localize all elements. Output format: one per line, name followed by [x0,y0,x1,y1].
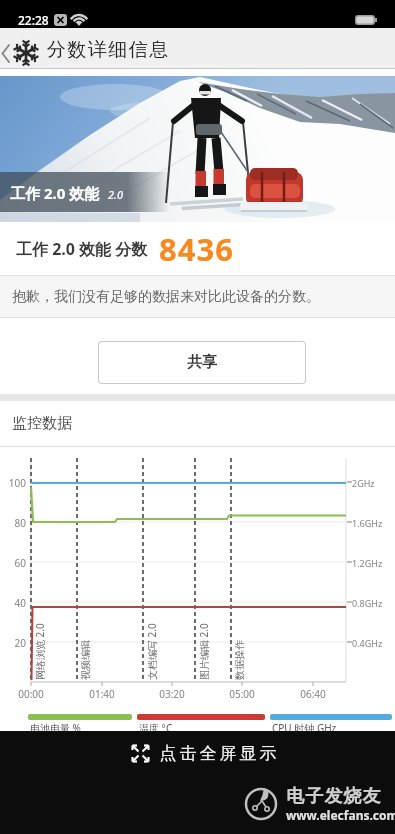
staticText: 80 [0,516,26,530]
staticText: 03:20 [155,687,189,701]
button[interactable]: 点击全屏显示 [131,743,278,764]
staticText: 40 [0,596,26,610]
staticText: 60 [0,556,26,570]
staticText: 监控数据 [12,414,72,433]
staticText: 工作 2.0 效能 分数 [16,238,148,260]
staticText: 网络浏览 2.0 [33,623,47,680]
button[interactable]: 分数详细信息 [0,28,395,69]
staticText: 22:28 [18,12,49,28]
staticText: 00:00 [14,687,48,701]
staticText: 01:40 [85,687,119,701]
staticText: 图片编辑 2.0 [197,623,211,680]
staticText: 8436 [159,228,234,270]
staticText: 2GHz [352,477,375,489]
staticText: 电池电量 % [30,721,81,735]
staticText: 05:00 [225,687,259,701]
staticText: 点击全屏显示 [158,743,278,764]
staticText: 06:40 [296,687,330,701]
staticText: 2.0 [108,187,124,202]
staticText: 1.2GHz [352,557,383,569]
staticText: 0.8GHz [352,597,383,609]
staticText: 共享 [187,353,217,372]
staticText: 20 [0,636,26,650]
staticText: 视频编辑 [79,640,92,680]
staticText: 数据操作 [233,640,246,680]
staticText: 0.4GHz [352,637,383,649]
staticText: 抱歉，我们没有足够的数据来对比此设备的分数。 [12,288,320,306]
staticText: CPU 时钟 GHz [272,721,337,735]
staticText: 电子发烧友 [286,785,381,808]
staticText: 工作 2.0 效能 [10,183,100,203]
staticText: 分数详细信息 [46,38,169,62]
staticText: 100 [0,476,26,490]
staticText: 文档编写 2.0 [145,623,159,680]
staticText: 温度 °C [139,721,173,735]
staticText: 1.6GHz [352,517,383,529]
button[interactable]: 共享 [99,342,305,383]
staticText: www.elecfans.com [286,807,395,823]
